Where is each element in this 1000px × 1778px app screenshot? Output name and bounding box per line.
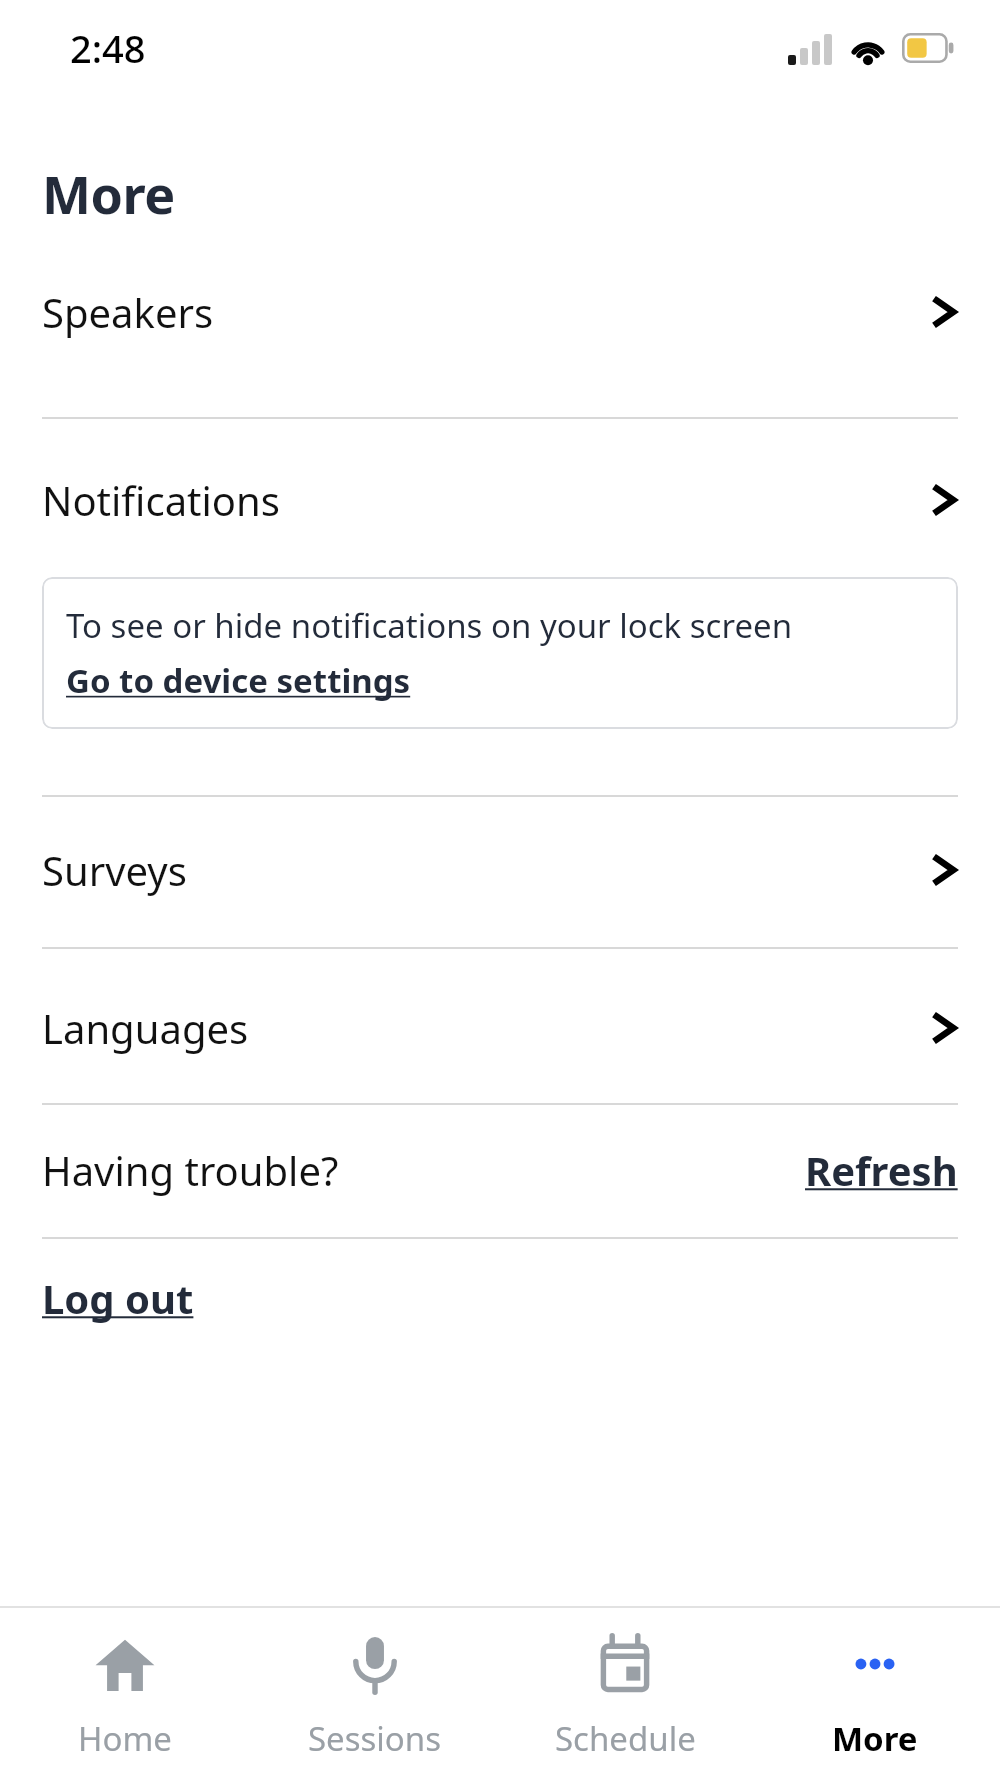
button[interactable]: Log out bbox=[42, 1271, 194, 1325]
staticText: Languages bbox=[42, 1001, 249, 1055]
button[interactable]: More bbox=[750, 1608, 1000, 1778]
button[interactable]: Refresh bbox=[805, 1143, 958, 1197]
staticText: More bbox=[42, 158, 175, 229]
button[interactable]: Sessions bbox=[250, 1608, 500, 1778]
staticText: Schedule bbox=[555, 1716, 696, 1761]
staticText: To see or hide notifications on your loc… bbox=[66, 603, 793, 648]
other: Schedule bbox=[593, 1632, 657, 1696]
staticText: Surveys bbox=[42, 843, 187, 897]
staticText: Refresh bbox=[805, 1143, 958, 1197]
button[interactable]: Notifications bbox=[0, 467, 1000, 577]
staticText: More bbox=[832, 1716, 918, 1761]
button[interactable]: Schedule bbox=[500, 1608, 750, 1778]
other: Sessions bbox=[343, 1632, 407, 1696]
staticText: Sessions bbox=[308, 1716, 442, 1761]
other: More bbox=[843, 1632, 907, 1696]
staticText: Having trouble? bbox=[42, 1143, 339, 1197]
staticText: Speakers bbox=[42, 285, 214, 339]
button[interactable]: Languages bbox=[0, 995, 1000, 1103]
staticText: Notifications bbox=[42, 473, 280, 527]
other: Home bbox=[93, 1632, 157, 1696]
staticText: 2:48 bbox=[70, 22, 146, 74]
staticText: Go to device settings bbox=[66, 658, 411, 703]
staticText: Home bbox=[78, 1716, 172, 1761]
button[interactable]: Home bbox=[0, 1608, 250, 1778]
staticText: Log out bbox=[42, 1271, 194, 1325]
button[interactable]: Surveys bbox=[0, 837, 1000, 947]
button[interactable]: Speakers bbox=[0, 279, 1000, 417]
button[interactable]: To see or hide notifications on your loc… bbox=[42, 577, 958, 729]
